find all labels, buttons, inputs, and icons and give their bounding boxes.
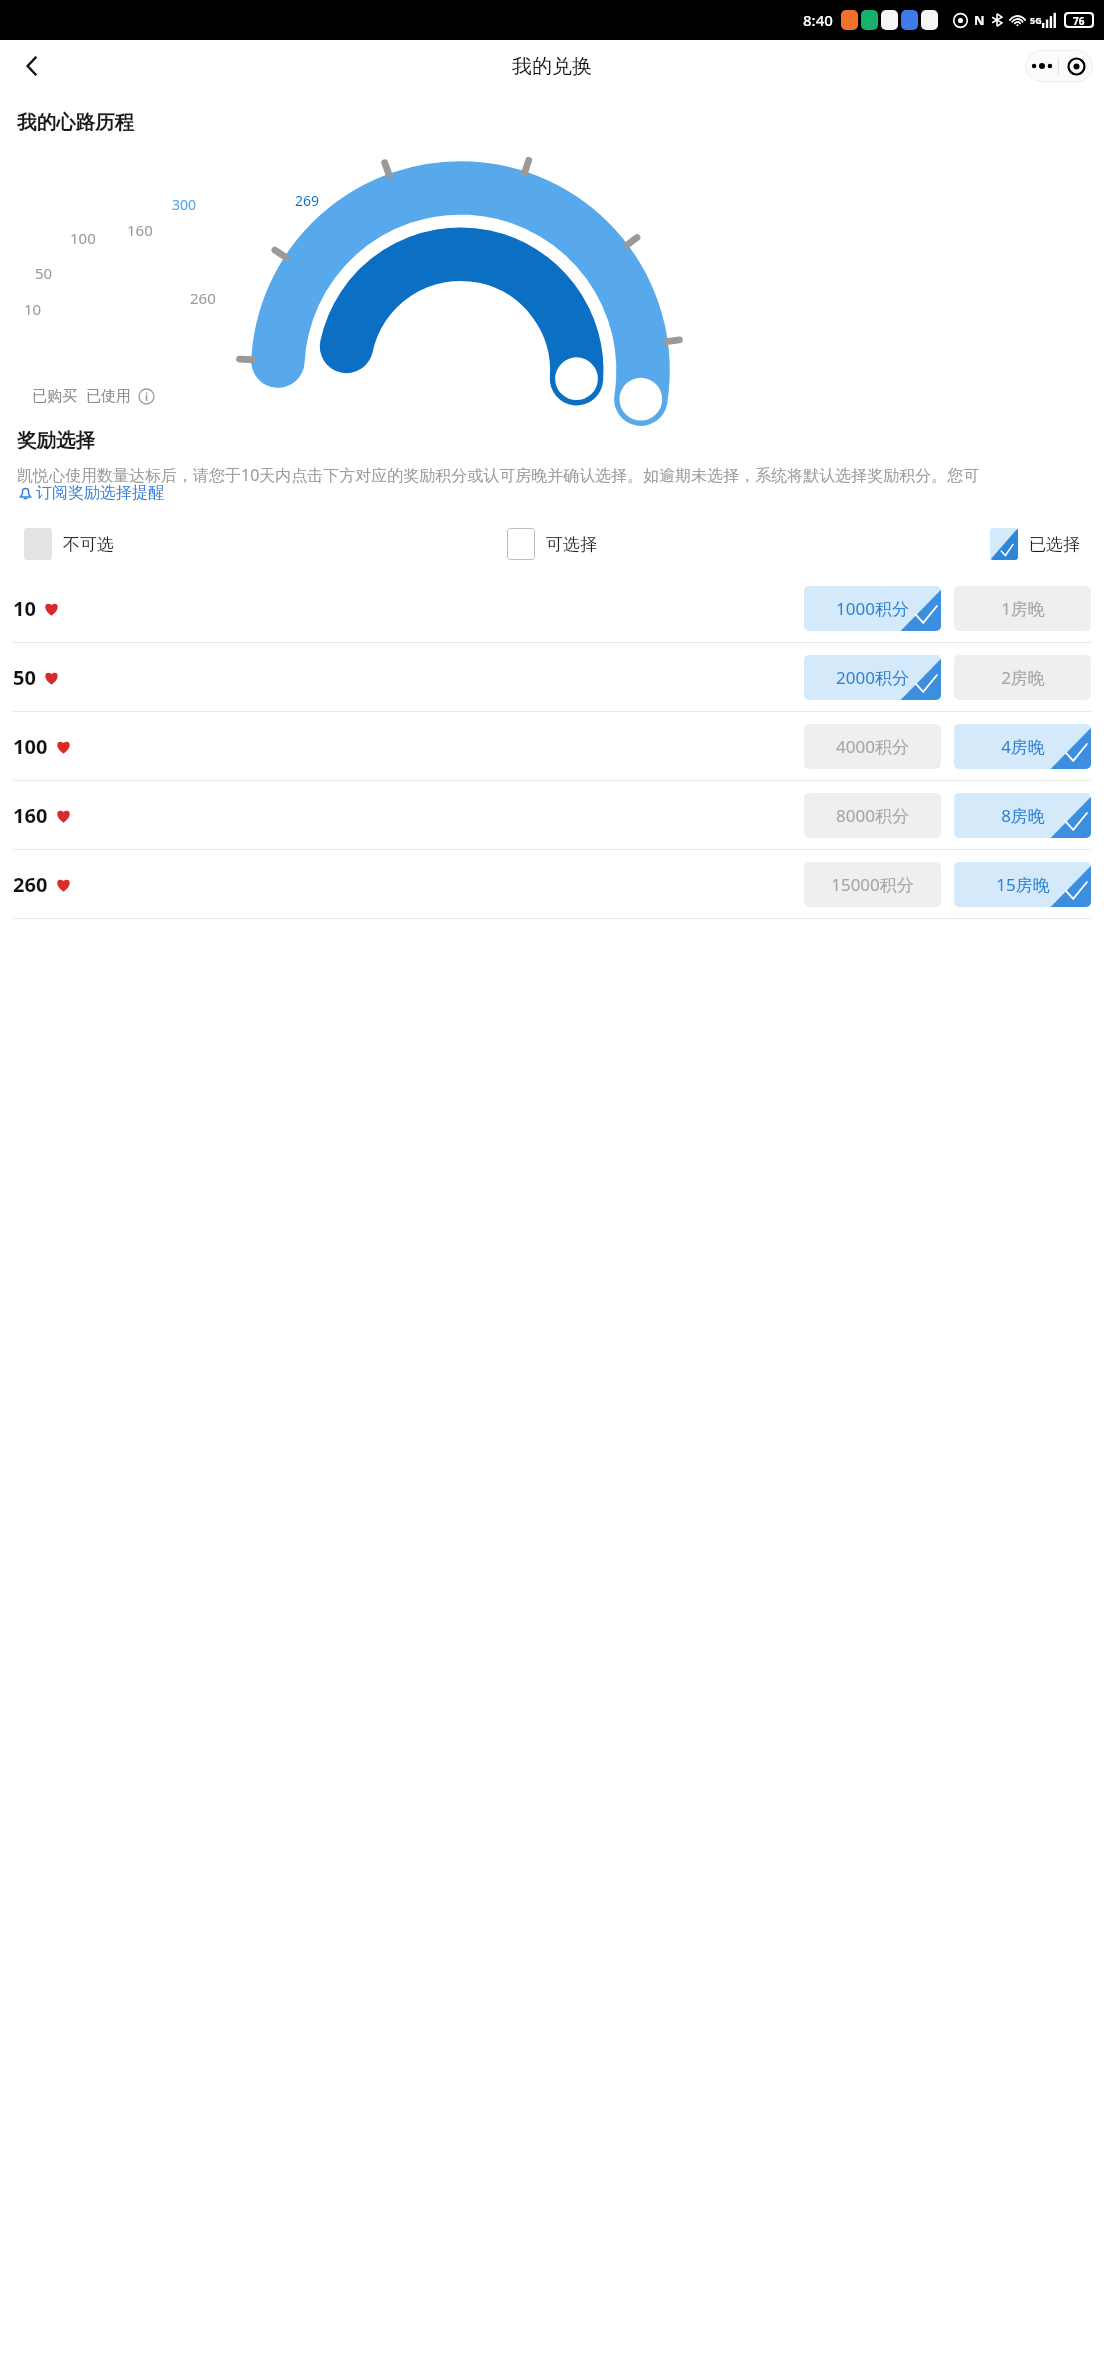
staticText: 260: [13, 871, 48, 898]
staticText: 100: [70, 228, 96, 248]
button[interactable]: 50: [13, 643, 1091, 711]
staticText: 2房晚: [1001, 666, 1045, 689]
staticText: 10: [13, 595, 36, 622]
button[interactable]: 已选择: [990, 528, 1080, 560]
staticText: 160: [127, 220, 153, 240]
button[interactable]: 4000积分: [804, 724, 941, 769]
staticText: 1房晚: [1001, 597, 1045, 620]
staticText: 已选择: [1029, 534, 1080, 555]
staticText: 100: [13, 733, 48, 760]
staticText: 15房晚: [996, 873, 1050, 896]
button[interactable]: 4房晚: [954, 724, 1091, 769]
button[interactable]: 100: [13, 712, 1091, 780]
button[interactable]: 1房晚: [954, 586, 1091, 631]
staticText: 269: [295, 191, 320, 210]
button[interactable]: 1000积分: [804, 586, 941, 631]
staticText: 奖励选择: [17, 428, 95, 453]
staticText: 凯悦心使用数量达标后，请您于10天内点击下方对应的奖励积分或认可房晚并确认选择。…: [17, 464, 980, 486]
staticText: 我的兑换: [512, 54, 592, 79]
button[interactable]: 160: [13, 781, 1091, 849]
button[interactable]: 2房晚: [954, 655, 1091, 700]
staticText: 已购买: [32, 387, 77, 406]
button[interactable]: 订阅奖励选择提醒: [17, 483, 164, 503]
staticText: 50: [35, 263, 53, 283]
staticText: 4000积分: [836, 735, 909, 758]
staticText: 8房晚: [1001, 804, 1045, 827]
button[interactable]: 10: [13, 574, 1091, 642]
staticText: 我的心路历程: [17, 110, 134, 135]
button[interactable]: 260: [13, 850, 1091, 918]
button[interactable]: 8房晚: [954, 793, 1091, 838]
staticText: 10: [24, 299, 42, 319]
button[interactable]: 可选择: [507, 528, 597, 560]
staticText: 2000积分: [836, 666, 909, 689]
staticText: 8000积分: [836, 804, 909, 827]
staticText: 50: [13, 664, 36, 691]
button[interactable]: 15房晚: [954, 862, 1091, 907]
button[interactable]: 15000积分: [804, 862, 941, 907]
button[interactable]: Info: [138, 388, 155, 405]
staticText: 5G: [1030, 14, 1042, 26]
staticText: 15000积分: [831, 873, 914, 896]
staticText: 300: [172, 195, 197, 214]
staticText: 160: [13, 802, 48, 829]
button[interactable]: More: [1025, 50, 1058, 82]
staticText: 不可选: [63, 534, 114, 555]
staticText: N: [974, 11, 985, 29]
staticText: 260: [190, 288, 216, 308]
staticText: 8:40: [803, 10, 833, 30]
staticText: 76: [1073, 14, 1085, 26]
button[interactable]: 2000积分: [804, 655, 941, 700]
staticText: 订阅奖励选择提醒: [36, 483, 164, 503]
button[interactable]: Back: [8, 42, 56, 90]
staticText: 可选择: [546, 534, 597, 555]
staticText: 已使用: [86, 387, 131, 406]
staticText: 1000积分: [836, 597, 909, 620]
button[interactable]: 8000积分: [804, 793, 941, 838]
button[interactable]: 不可选: [24, 528, 114, 560]
button[interactable]: Close: [1059, 50, 1093, 82]
staticText: 4房晚: [1001, 735, 1045, 758]
